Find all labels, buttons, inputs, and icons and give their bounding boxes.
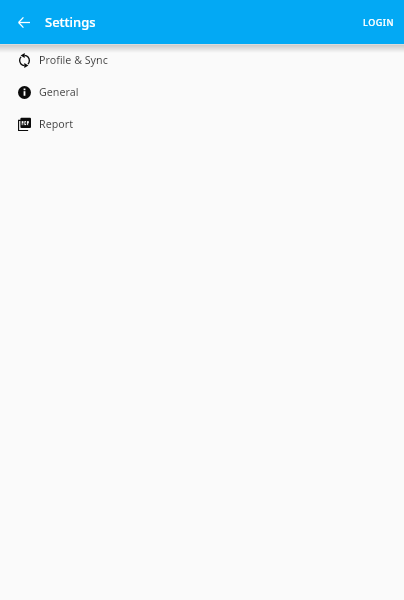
- staticText: Profile & Sync: [39, 53, 108, 68]
- button[interactable]: Profile & Sync: [0, 44, 404, 76]
- staticText: Report: [39, 117, 73, 132]
- staticText: Settings: [45, 13, 96, 31]
- staticText: General: [39, 85, 79, 100]
- staticText: LOGIN: [363, 16, 394, 28]
- button[interactable]: LOGIN: [351, 3, 404, 41]
- button[interactable]: Back: [2, 0, 46, 44]
- button[interactable]: General: [0, 76, 404, 108]
- button[interactable]: Report: [0, 108, 404, 140]
